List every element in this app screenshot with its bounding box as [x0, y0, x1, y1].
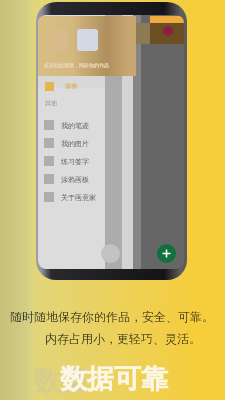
staticText: 随时随地保存你的作品，安全、可靠。 — [10, 309, 214, 324]
staticText: 内存占用小，更轻巧、灵活。 — [45, 331, 201, 346]
staticText: 我的笔迹 — [61, 121, 89, 130]
staticText: 练习签字 — [61, 157, 89, 166]
button[interactable]: 我的图片 — [38, 134, 105, 152]
button[interactable]: 关于画意家 — [38, 188, 105, 206]
button[interactable]: 我的笔迹 — [38, 116, 105, 134]
staticText: 数据可靠 — [60, 362, 168, 396]
staticText: 涂鸦画板 — [61, 175, 89, 184]
staticText: 涂鸦 — [65, 82, 77, 90]
button[interactable]: 练习签字 — [38, 152, 105, 170]
button[interactable]: 涂鸦画板 — [38, 170, 105, 188]
button[interactable]: 涂鸦 — [38, 79, 105, 93]
staticText: 关于画意家 — [61, 193, 96, 202]
staticText: 数据 — [33, 364, 87, 398]
staticText: 其他 — [45, 99, 57, 107]
button[interactable]: Add — [157, 244, 176, 263]
staticText: 我的图片 — [61, 139, 89, 148]
staticText: 点击此处登录，同步你的作品 — [44, 62, 109, 68]
